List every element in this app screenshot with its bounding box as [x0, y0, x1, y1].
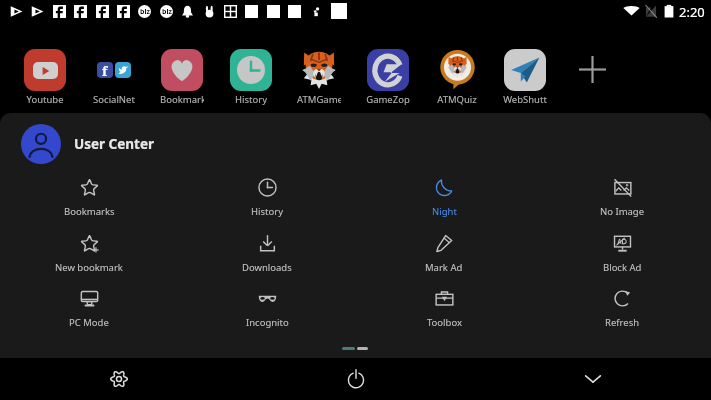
staticText: Night [432, 205, 457, 218]
staticText: No Image [600, 205, 645, 218]
staticText: Bookmark [160, 93, 204, 106]
staticText: 2:20 [679, 3, 705, 21]
button[interactable]: Collapse [474, 358, 711, 400]
staticText: PC Mode [69, 316, 109, 329]
staticText: Mark Ad [425, 261, 463, 274]
button[interactable]: History [221, 45, 281, 107]
button[interactable]: Mark Ad [400, 225, 488, 277]
staticText: New bookmark [55, 261, 123, 274]
button[interactable]: f [84, 45, 144, 107]
staticText: SocialNet [93, 93, 135, 106]
staticText: blz [140, 7, 150, 17]
staticText: ATMGame [297, 93, 341, 106]
button[interactable]: PC Mode [45, 280, 133, 332]
button[interactable]: Refresh [578, 280, 666, 332]
staticText: History [251, 205, 283, 218]
staticText: History [235, 93, 267, 106]
staticText: Refresh [605, 316, 640, 329]
staticText: blz [162, 7, 172, 17]
button[interactable]: Bookmark [152, 45, 212, 107]
staticText: f [102, 62, 108, 78]
button[interactable]: Toolbox [400, 280, 488, 332]
button[interactable]: WebShutt [495, 45, 555, 107]
button[interactable]: History [223, 169, 311, 221]
staticText: Block Ad [603, 261, 642, 274]
staticText: WebShutt [503, 93, 547, 106]
button[interactable]: No Image [578, 169, 666, 221]
button[interactable]: Downloads [223, 225, 311, 277]
staticText: ATMQuiz [437, 93, 477, 106]
staticText: Bookmarks [64, 205, 115, 218]
staticText: Youtube [26, 93, 64, 106]
staticText: Downloads [242, 261, 292, 274]
button[interactable]: Add shortcut [568, 45, 616, 93]
button[interactable]: GameZop [358, 45, 418, 107]
button[interactable]: Youtube [15, 45, 75, 107]
button[interactable]: User Center [0, 118, 711, 170]
button[interactable]: ATMQuiz [427, 45, 487, 107]
button[interactable]: New bookmark [45, 225, 133, 277]
button[interactable]: Exit [237, 358, 474, 400]
button[interactable]: ATMGame [289, 45, 349, 107]
button[interactable]: Night [400, 169, 488, 221]
staticText: Incognito [246, 316, 289, 329]
staticText: User Center [74, 135, 155, 153]
button[interactable]: Settings [0, 358, 237, 400]
button[interactable]: Bookmarks [45, 169, 133, 221]
button[interactable]: Incognito [223, 280, 311, 332]
staticText: GameZop [366, 93, 410, 106]
button[interactable]: Block Ad [578, 225, 666, 277]
staticText: Toolbox [427, 316, 462, 329]
